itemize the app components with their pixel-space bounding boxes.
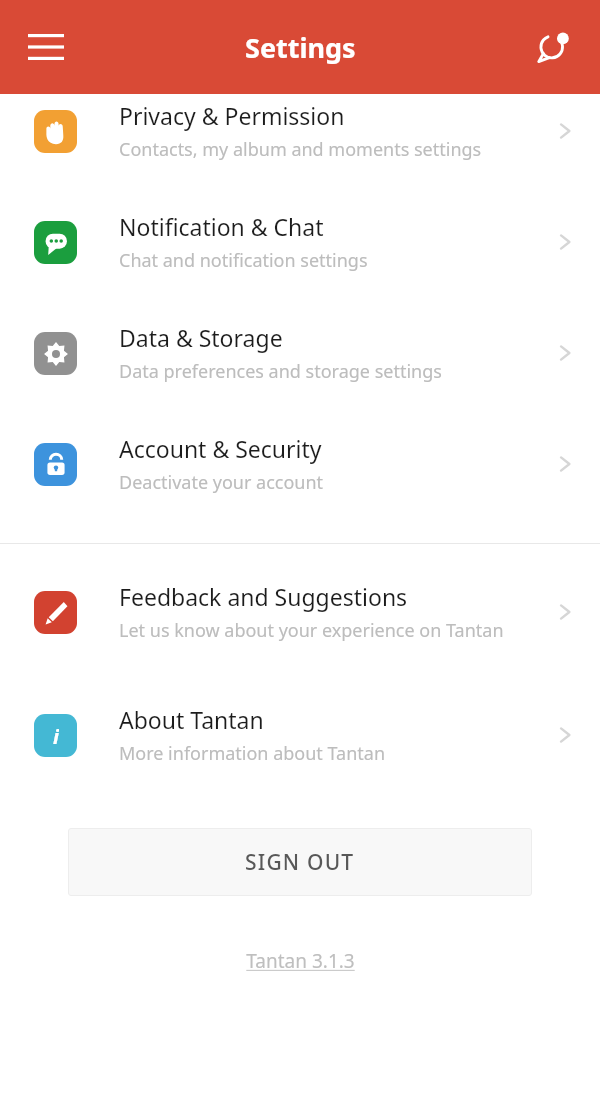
button[interactable]: Account & Security: [0, 433, 600, 495]
button[interactable]: Data & Storage: [0, 322, 600, 384]
button[interactable]: SIGN OUT: [68, 828, 532, 896]
staticText: More information about Tantan: [119, 741, 386, 766]
staticText: Data & Storage: [119, 322, 283, 353]
staticText: i: [53, 723, 59, 749]
staticText: Chat and notification settings: [119, 248, 368, 273]
button[interactable]: Privacy & Permission: [0, 100, 600, 162]
button[interactable]: Chat: [522, 15, 586, 79]
button[interactable]: Menu: [14, 15, 78, 79]
staticText: About Tantan: [119, 704, 264, 735]
staticText: Privacy & Permission: [119, 100, 345, 131]
staticText: SIGN OUT: [245, 848, 355, 877]
staticText: Contacts, my album and moments settings: [119, 137, 482, 162]
staticText: Deactivate your account: [119, 470, 324, 495]
staticText: Settings: [245, 29, 356, 66]
staticText: Data preferences and storage settings: [119, 359, 442, 384]
button[interactable]: Feedback and Suggestions: [0, 581, 600, 643]
staticText: Account & Security: [119, 433, 322, 464]
staticText: Let us know about your experience on Tan…: [119, 618, 504, 643]
button[interactable]: i: [0, 704, 600, 766]
staticText: Feedback and Suggestions: [119, 581, 408, 612]
staticText: Notification & Chat: [119, 211, 324, 242]
button[interactable]: Notification & Chat: [0, 211, 600, 273]
button[interactable]: Tantan 3.1.3: [246, 948, 355, 974]
